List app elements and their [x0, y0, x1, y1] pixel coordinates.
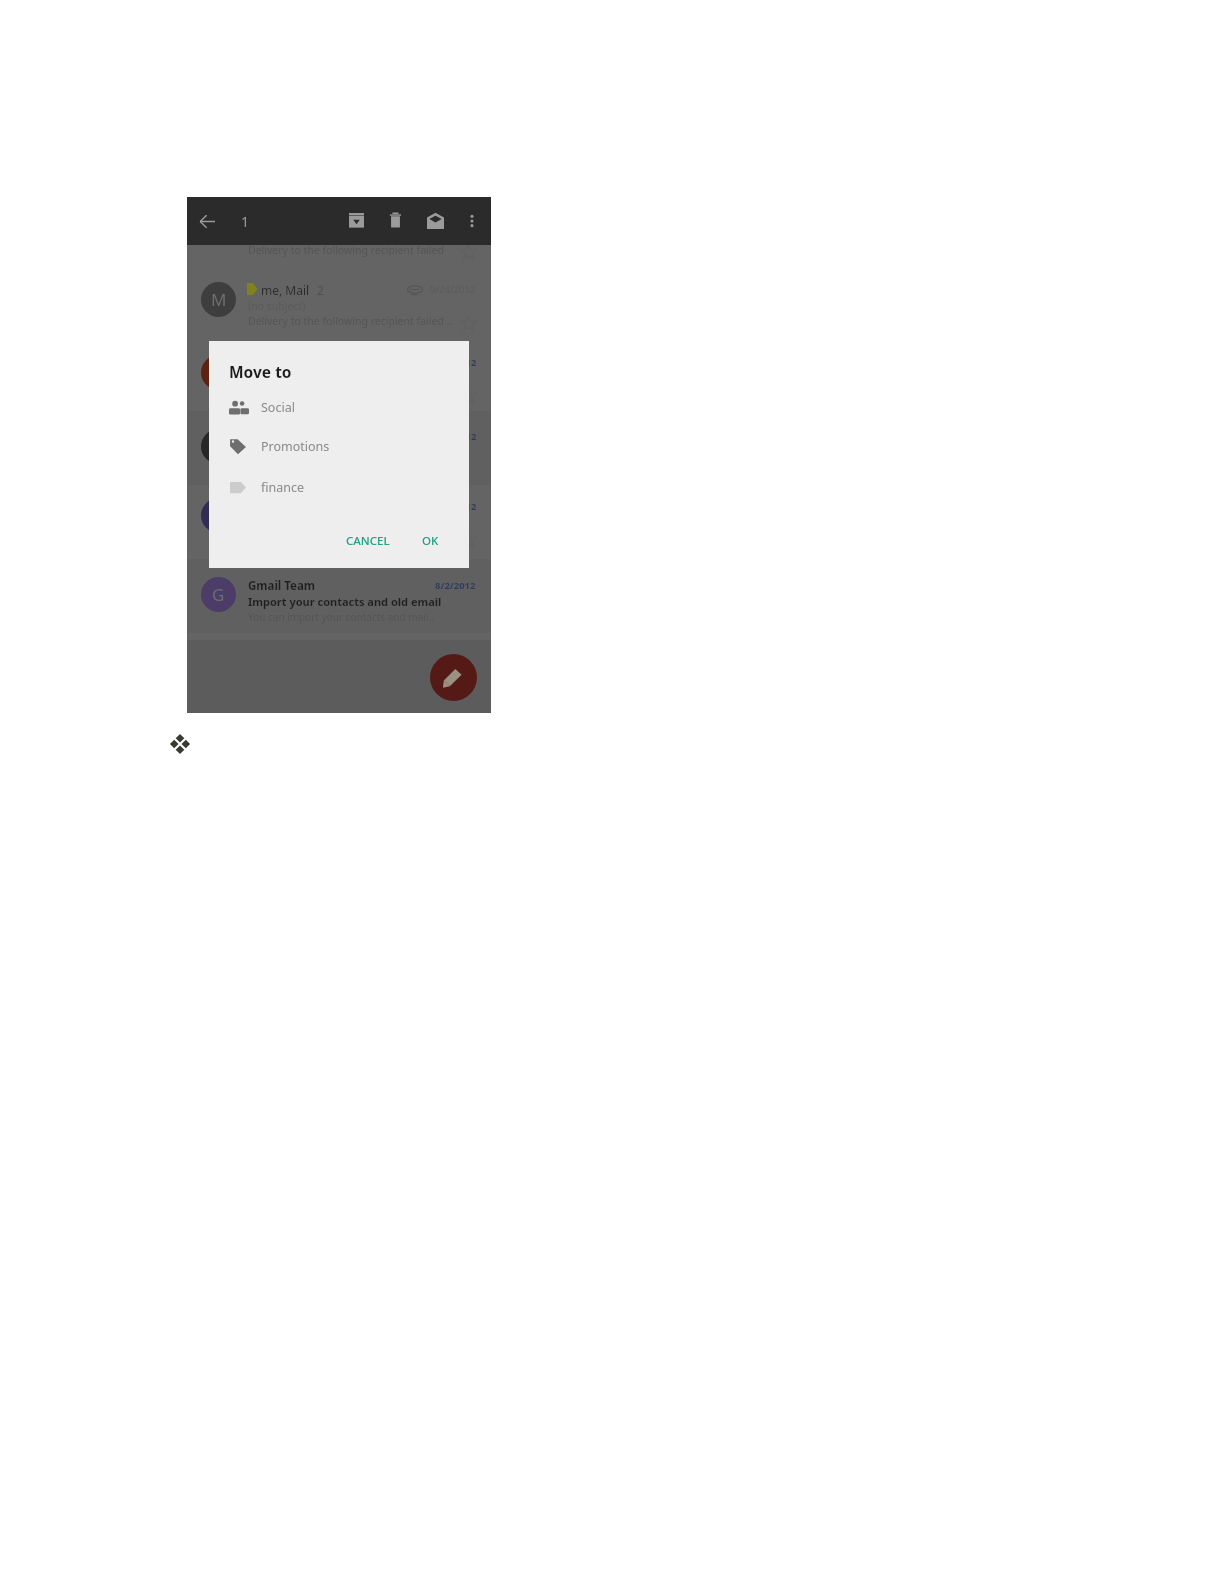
button[interactable]: Back	[195, 209, 219, 233]
button[interactable]: Mark as read	[423, 208, 448, 233]
staticText: 9/9/2012	[436, 356, 477, 369]
staticText: OK	[422, 533, 439, 549]
staticText: 8/2/2012	[435, 579, 476, 592]
staticText: 1	[241, 212, 250, 231]
staticText: Move to	[229, 361, 292, 382]
staticText: Gmail Team	[248, 578, 316, 594]
button[interactable]: me, Mail 2 - (no subject)	[187, 263, 491, 337]
button[interactable]: finance	[209, 470, 469, 504]
staticText: 9/5/2012	[436, 430, 477, 443]
button[interactable]: Archive	[344, 208, 369, 233]
staticText: 8/9/2012	[436, 500, 477, 513]
staticText: Social	[261, 399, 295, 416]
staticText: Import your contacts and old email	[248, 594, 442, 609]
button[interactable]: Delete	[383, 208, 408, 233]
button[interactable]: Compose	[430, 654, 477, 701]
staticText: Delivery to the following recipient fail…	[248, 314, 453, 328]
button[interactable]: Conversation	[187, 411, 491, 485]
staticText: CANCEL	[346, 533, 390, 549]
staticText: 2	[317, 282, 324, 298]
button[interactable]: Social	[209, 390, 469, 424]
staticText: M	[211, 288, 227, 311]
staticText: me, Mail	[261, 282, 310, 298]
staticText: G	[212, 583, 225, 606]
staticText: You can import your contacts and mail..	[248, 610, 434, 624]
staticText: Promotions	[261, 438, 330, 455]
button[interactable]: Promotions	[209, 429, 469, 463]
staticText: Delivery to the following recipient fail…	[248, 243, 444, 257]
button[interactable]: CANCEL	[338, 527, 398, 555]
button[interactable]: Conversation	[187, 485, 491, 559]
button[interactable]: More options	[460, 209, 484, 233]
staticText: finance	[261, 479, 305, 496]
button[interactable]: OK	[414, 527, 447, 555]
button[interactable]: Conversation	[187, 337, 491, 411]
button[interactable]: Delivery to the following recipient fail…	[187, 245, 491, 263]
button[interactable]: Gmail Team - Import your contacts and ol…	[187, 559, 491, 640]
